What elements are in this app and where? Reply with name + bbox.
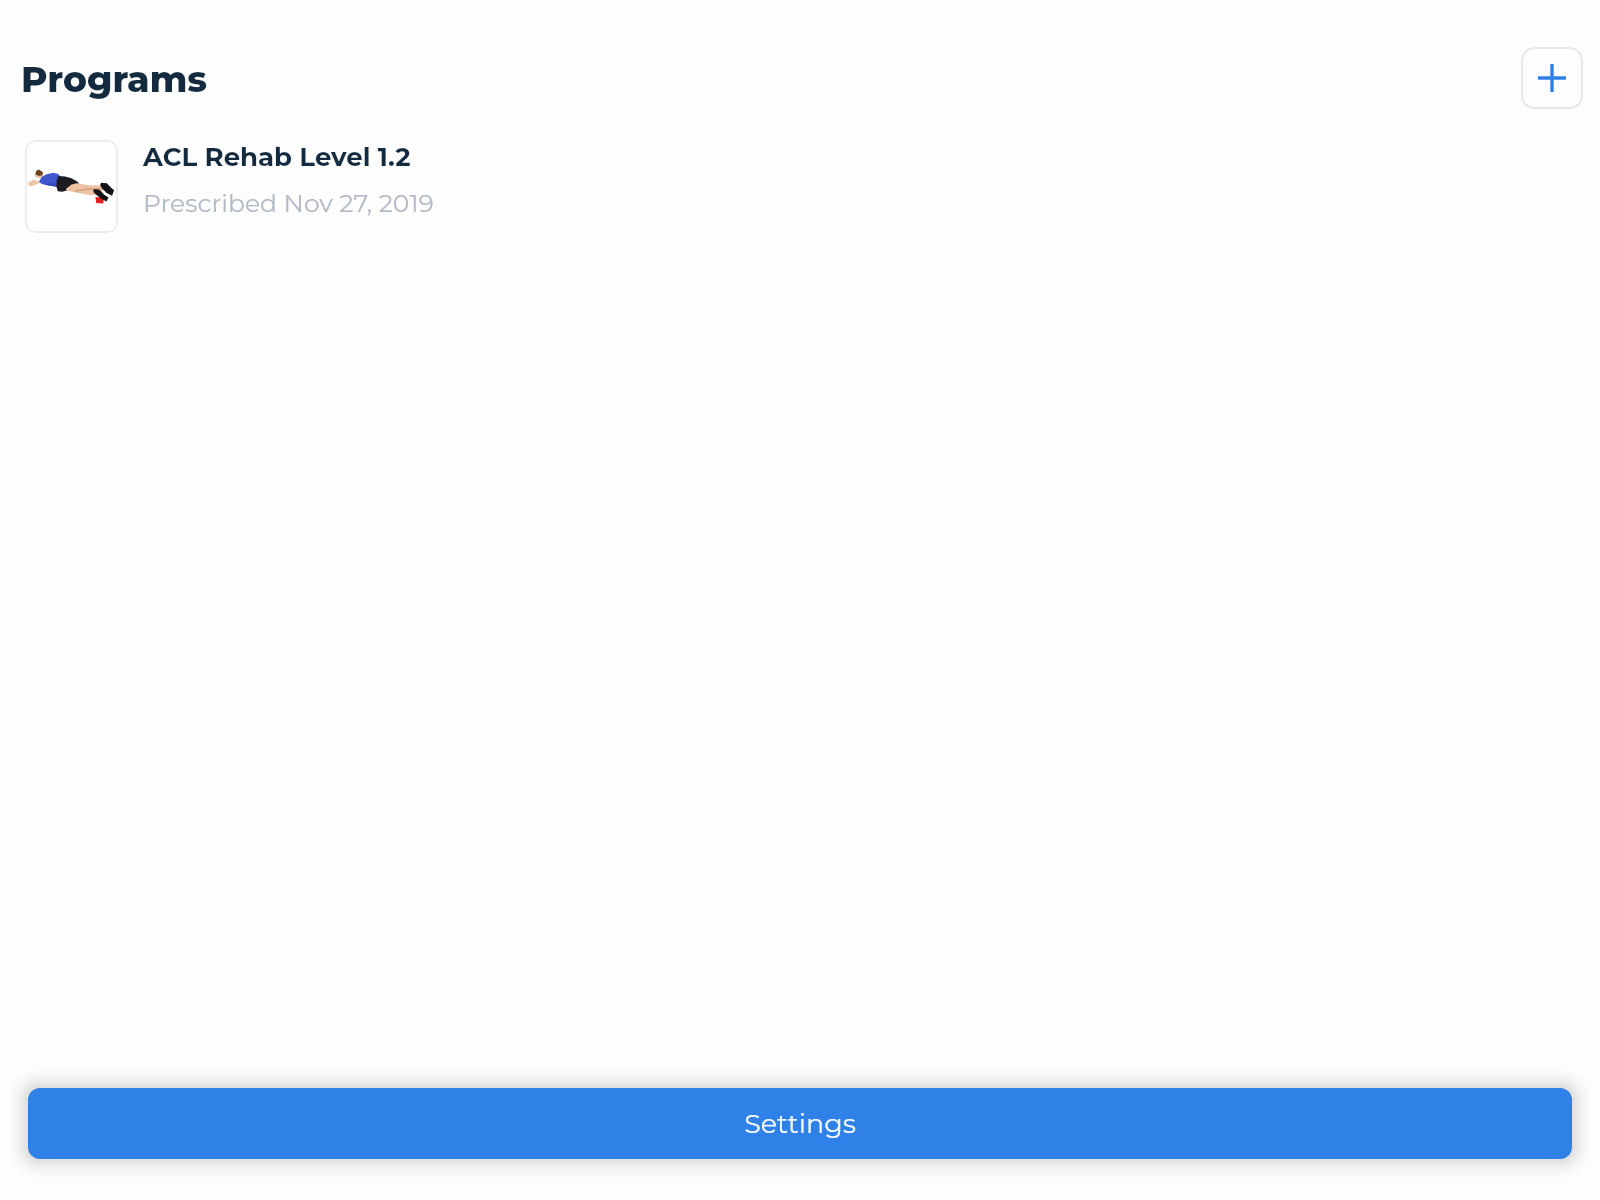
staticText: ACL Rehab Level 1.2 (143, 141, 411, 173)
staticText: Prescribed Nov 27, 2019 (143, 188, 434, 218)
button[interactable]: ACL Rehab Level 1.2 (0, 130, 1600, 242)
button[interactable]: Add program (1521, 47, 1583, 109)
staticText: Settings (744, 1107, 856, 1140)
staticText: Programs (21, 57, 208, 101)
button[interactable]: Settings (28, 1088, 1572, 1159)
